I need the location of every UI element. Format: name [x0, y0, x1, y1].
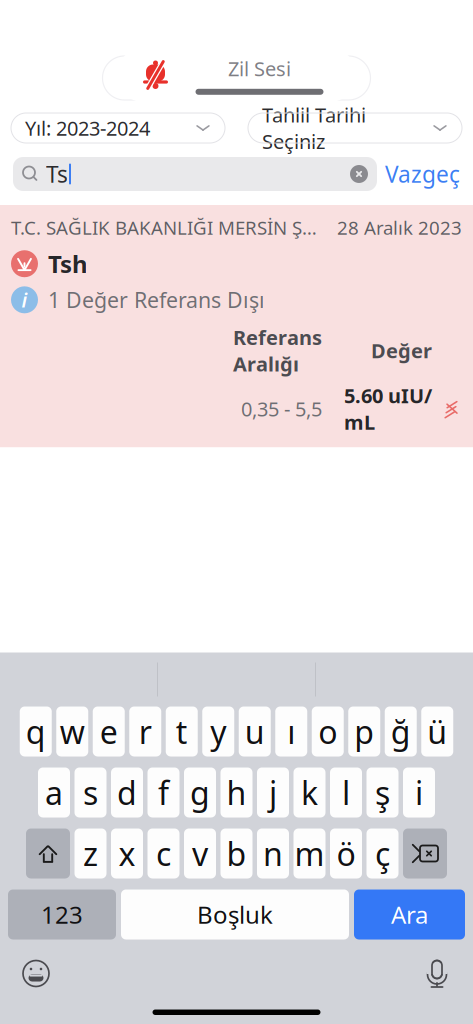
- staticText: l: [342, 771, 350, 814]
- staticText: z: [83, 832, 98, 875]
- button[interactable]: n: [257, 828, 289, 878]
- button[interactable]: ü: [421, 706, 453, 756]
- button[interactable]: z: [74, 828, 106, 878]
- button[interactable]: ö: [330, 828, 362, 878]
- staticText: 5.60 uIU/mL: [344, 382, 432, 435]
- staticText: h: [226, 771, 246, 814]
- button[interactable]: Temizle: [350, 165, 368, 183]
- button[interactable]: r: [129, 706, 161, 756]
- button[interactable]: y: [202, 706, 234, 756]
- button[interactable]: Shift: [26, 828, 70, 878]
- button[interactable]: Dikte: [415, 951, 459, 995]
- staticText: a: [45, 771, 63, 814]
- button[interactable]: o: [312, 706, 344, 756]
- button[interactable]: q: [20, 706, 52, 756]
- staticText: n: [263, 832, 283, 875]
- staticText: Ara: [391, 899, 428, 930]
- staticText: Değer: [371, 337, 432, 364]
- button[interactable]: ç: [366, 828, 398, 878]
- staticText: Tsh: [48, 248, 88, 280]
- staticText: e: [100, 710, 118, 753]
- button[interactable]: ş: [366, 767, 398, 817]
- button[interactable]: i: [403, 767, 435, 817]
- staticText: Referans Aralığı: [233, 324, 322, 377]
- staticText: k: [301, 771, 318, 814]
- staticText: 0,35 - 5,5: [241, 395, 322, 422]
- button[interactable]: ğ: [385, 706, 417, 756]
- staticText: o: [318, 710, 337, 753]
- staticText: Vazgeç: [385, 159, 460, 189]
- button[interactable]: d: [111, 767, 143, 817]
- staticText: u: [245, 710, 265, 753]
- button[interactable]: p: [348, 706, 380, 756]
- button[interactable]: ı: [275, 706, 307, 756]
- staticText: p: [354, 710, 374, 753]
- staticText: ı: [287, 710, 295, 753]
- staticText: v: [192, 832, 208, 875]
- staticText: Ts: [46, 159, 68, 189]
- staticText: 1 Değer Referans Dışı: [48, 286, 265, 314]
- staticText: m: [294, 832, 324, 875]
- button[interactable]: Ara: [354, 889, 465, 939]
- button[interactable]: Vazgeç: [385, 159, 460, 189]
- staticText: w: [60, 710, 85, 753]
- button[interactable]: a: [38, 767, 70, 817]
- button[interactable]: g: [184, 767, 216, 817]
- button[interactable]: Yıl: 2023-2024: [11, 113, 225, 143]
- staticText: x: [118, 832, 135, 875]
- button[interactable]: b: [220, 828, 252, 878]
- button[interactable]: j: [257, 767, 289, 817]
- button[interactable]: v: [184, 828, 216, 878]
- button[interactable]: 123: [8, 889, 116, 939]
- staticText: b: [226, 832, 246, 875]
- staticText: Yıl: 2023-2024: [25, 115, 150, 141]
- staticText: ç: [375, 832, 390, 875]
- staticText: y: [210, 710, 226, 753]
- staticText: g: [190, 771, 210, 814]
- button[interactable]: T.C. SAĞLIK BAKANLIĞI MERSİN ŞEHİR HA…: [0, 205, 473, 447]
- button[interactable]: Emoji: [14, 951, 58, 995]
- button[interactable]: e: [93, 706, 125, 756]
- button[interactable]: Boşluk: [121, 889, 349, 939]
- button[interactable]: u: [239, 706, 271, 756]
- staticText: ğ: [391, 710, 411, 753]
- staticText: i: [21, 286, 27, 313]
- staticText: ö: [336, 832, 355, 875]
- staticText: j: [269, 771, 277, 814]
- button[interactable]: k: [293, 767, 325, 817]
- staticText: Zil Sesi: [228, 55, 291, 82]
- staticText: T.C. SAĞLIK BAKANLIĞI MERSİN ŞEHİR HA…: [11, 215, 325, 240]
- button[interactable]: h: [220, 767, 252, 817]
- staticText: t: [176, 710, 188, 753]
- button[interactable]: l: [330, 767, 362, 817]
- staticText: c: [156, 832, 171, 875]
- button[interactable]: m: [293, 828, 325, 878]
- staticText: 123: [41, 899, 83, 930]
- staticText: 28 Aralık 2023: [337, 215, 462, 240]
- staticText: ş: [375, 771, 390, 814]
- button[interactable]: Sil: [403, 828, 447, 878]
- button[interactable]: t: [166, 706, 198, 756]
- button[interactable]: w: [56, 706, 88, 756]
- button[interactable]: f: [147, 767, 179, 817]
- staticText: r: [139, 710, 152, 753]
- staticText: Tahlil Tarihi Seçiniz: [262, 101, 366, 154]
- staticText: Boşluk: [197, 899, 273, 930]
- staticText: i: [415, 771, 423, 814]
- staticText: s: [83, 771, 98, 814]
- button[interactable]: x: [111, 828, 143, 878]
- button[interactable]: Tahlil Tarihi Seçiniz: [248, 113, 462, 143]
- staticText: f: [158, 771, 169, 814]
- button[interactable]: c: [147, 828, 179, 878]
- staticText: q: [26, 710, 46, 753]
- button[interactable]: s: [74, 767, 106, 817]
- staticText: ü: [427, 710, 447, 753]
- staticText: d: [117, 771, 137, 814]
